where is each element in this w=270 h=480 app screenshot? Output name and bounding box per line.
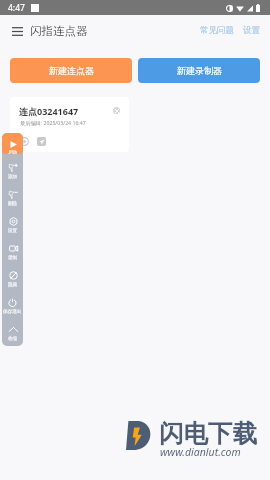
- staticText: 隐藏: [8, 282, 18, 288]
- staticText: 连点03241647: [19, 105, 79, 117]
- staticText: 闪指连点器: [30, 24, 88, 38]
- button[interactable]: 录制: [2, 235, 23, 262]
- staticText: 设置: [243, 25, 260, 36]
- staticText: 4:47: [8, 2, 25, 14]
- staticText: 收缩: [8, 336, 18, 342]
- staticText: 录制: [8, 255, 18, 261]
- staticText: 保存退出: [3, 309, 22, 315]
- button[interactable]: 连点03241647: [10, 97, 129, 152]
- button[interactable]: 设置: [241, 20, 262, 41]
- button[interactable]: 添加: [2, 154, 23, 181]
- button[interactable]: Close: [113, 107, 120, 114]
- staticText: www.dianlut.com: [160, 445, 241, 459]
- button[interactable]: 保存退出: [2, 289, 23, 316]
- button[interactable]: 常见问题: [198, 20, 236, 41]
- button[interactable]: 设置: [2, 208, 23, 235]
- button[interactable]: 收缩: [2, 316, 23, 343]
- staticText: 设置: [8, 228, 18, 234]
- staticText: 新建连点器: [49, 65, 94, 76]
- staticText: 常见问题: [200, 25, 234, 36]
- button[interactable]: 新建录制器: [138, 58, 260, 83]
- button[interactable]: Run: [20, 137, 29, 146]
- staticText: 最后编辑: 2025/03/24 16:47: [20, 119, 86, 126]
- button[interactable]: 新建连点器: [10, 58, 132, 83]
- staticText: 删除: [8, 201, 18, 207]
- button[interactable]: 删除: [2, 181, 23, 208]
- button[interactable]: 启动: [2, 133, 23, 154]
- staticText: 新建录制器: [177, 65, 222, 76]
- staticText: 启动: [8, 150, 18, 154]
- button[interactable]: Menu: [7, 21, 27, 41]
- button[interactable]: Share: [37, 137, 46, 146]
- button[interactable]: 隐藏: [2, 262, 23, 289]
- staticText: 添加: [8, 174, 18, 180]
- staticText: 闪电下载: [159, 418, 257, 449]
